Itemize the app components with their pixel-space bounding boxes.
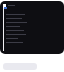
button[interactable]	[6, 17, 34, 21]
button[interactable]	[6, 21, 34, 25]
button[interactable]	[6, 13, 34, 17]
button[interactable]	[6, 37, 34, 41]
button[interactable]	[6, 41, 34, 45]
button[interactable]	[6, 29, 34, 33]
button[interactable]	[6, 33, 34, 37]
button[interactable]	[6, 25, 34, 29]
button[interactable]: Profile	[3, 4, 6, 8]
